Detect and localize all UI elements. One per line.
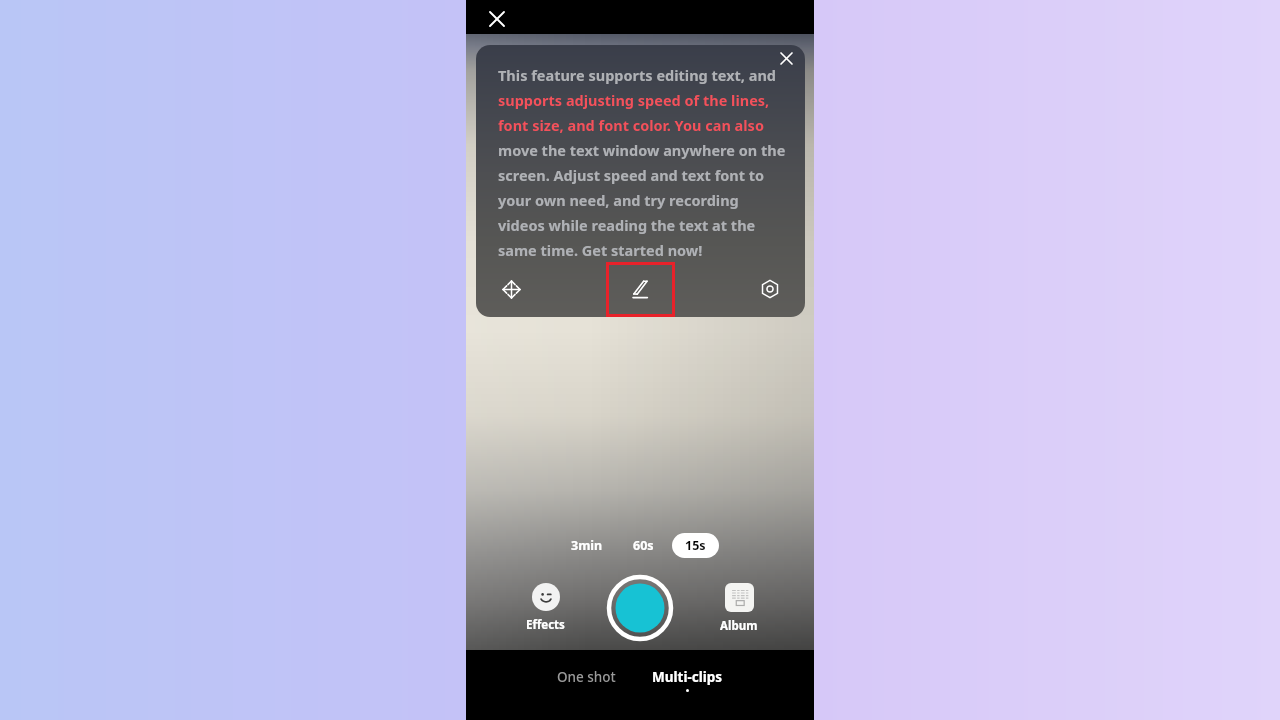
button[interactable]: Effects — [526, 583, 565, 633]
button[interactable]: 3min — [561, 533, 613, 558]
button[interactable]: Edit text — [606, 262, 675, 317]
button[interactable]: Move — [494, 272, 528, 306]
staticText: 15s — [685, 537, 706, 554]
staticText: This feature supports editing text, and … — [498, 65, 786, 260]
staticText: Album — [720, 618, 758, 634]
button[interactable]: Album — [720, 583, 758, 634]
button[interactable]: Close — [484, 6, 510, 32]
button[interactable]: Record — [608, 576, 672, 640]
staticText: Effects — [526, 617, 565, 633]
staticText: Multi-clips — [652, 668, 723, 686]
staticText: 3min — [571, 537, 603, 554]
button[interactable]: 15s — [672, 533, 719, 558]
button[interactable]: Settings — [753, 272, 787, 306]
staticText: 60s — [633, 537, 654, 554]
button[interactable]: One shot — [543, 664, 630, 690]
button[interactable]: Close teleprompter — [773, 45, 799, 71]
button[interactable]: Multi-clips — [638, 664, 737, 696]
staticText: One shot — [557, 668, 616, 686]
button[interactable]: 60s — [623, 533, 664, 558]
